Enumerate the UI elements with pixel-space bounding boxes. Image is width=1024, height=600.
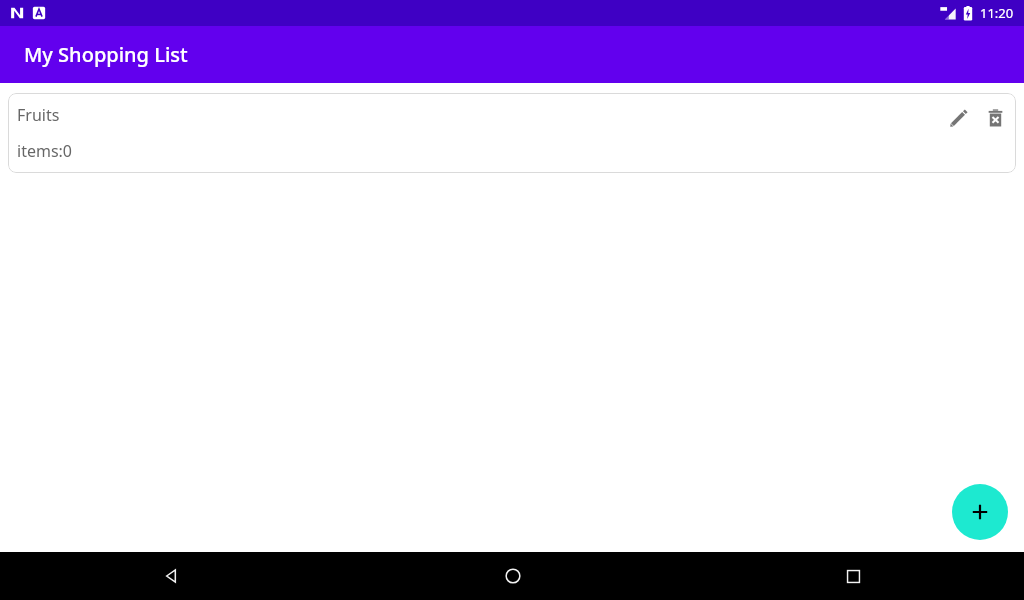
staticText: Fruits — [17, 104, 60, 126]
button[interactable]: Add list — [952, 484, 1008, 540]
staticText: items:0 — [17, 140, 72, 162]
button[interactable]: Delete — [980, 103, 1010, 133]
button[interactable]: Recent apps — [683, 552, 1024, 600]
staticText: 11:20 — [980, 4, 1014, 22]
button[interactable]: Back — [0, 552, 342, 600]
button[interactable]: Edit — [944, 103, 974, 133]
button[interactable]: Fruits — [8, 93, 1016, 173]
staticText: My Shopping List — [24, 41, 188, 68]
button[interactable]: Home — [342, 552, 683, 600]
